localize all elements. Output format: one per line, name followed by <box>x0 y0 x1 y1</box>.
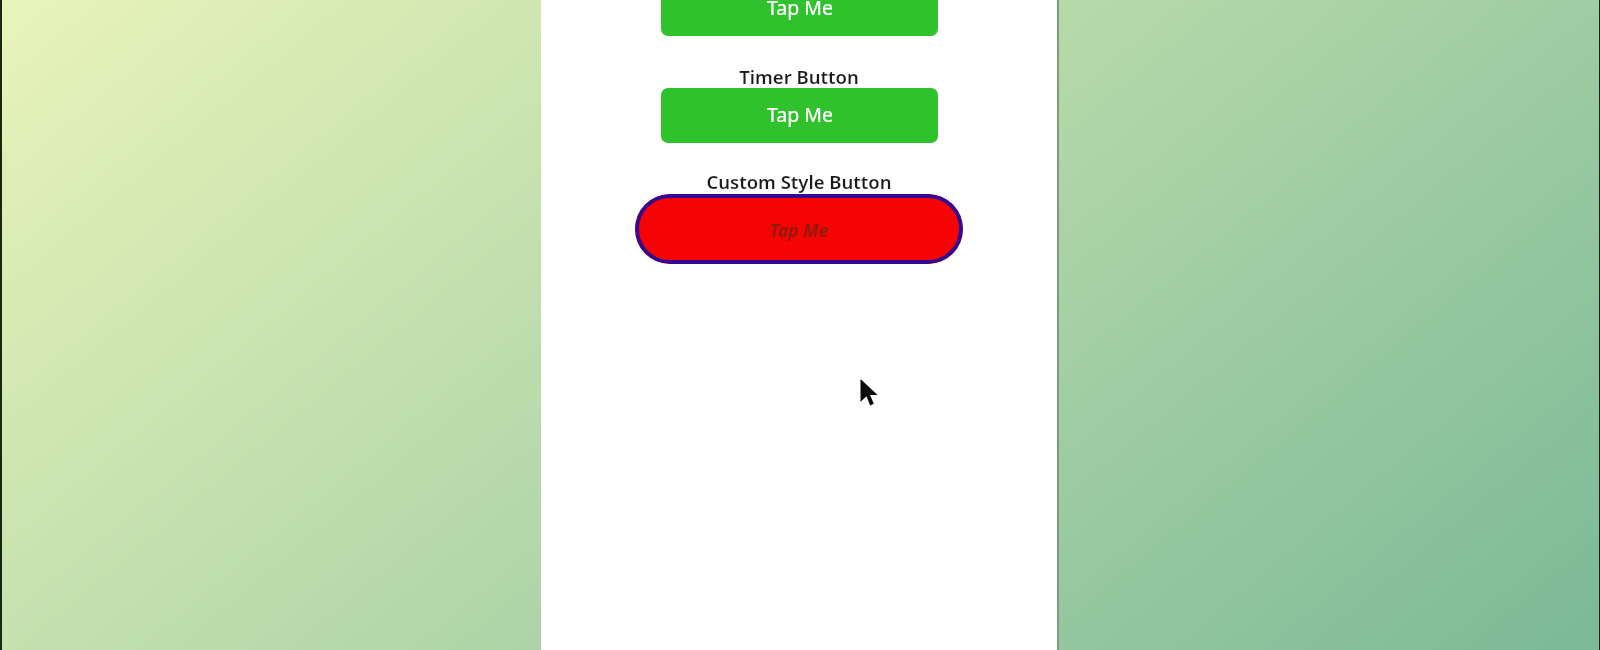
other: Pointer <box>859 378 879 407</box>
staticText: Custom Style Button <box>706 169 892 194</box>
button[interactable]: Tap Me <box>661 88 938 143</box>
button[interactable]: Tap Me <box>635 194 963 264</box>
staticText: Tap Me <box>767 0 833 21</box>
staticText: Timer Button <box>739 64 859 89</box>
staticText: Tap Me <box>767 101 833 128</box>
button[interactable]: Tap Me <box>661 0 938 36</box>
staticText: Tap Me <box>770 218 829 242</box>
